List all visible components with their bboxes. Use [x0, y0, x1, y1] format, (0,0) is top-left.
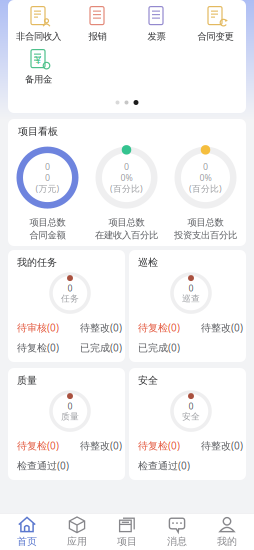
staticText: 0: [188, 400, 193, 412]
staticText: 待复检(0): [138, 439, 180, 452]
staticText: 应用: [67, 535, 87, 548]
staticText: 已完成(0): [138, 341, 180, 354]
staticText: 0: [124, 161, 129, 173]
staticText: 待整改(0): [201, 439, 243, 452]
button[interactable]: 我的: [202, 515, 252, 549]
staticText: 质量: [61, 411, 79, 422]
staticText: 安全: [138, 374, 158, 387]
staticText: 检查通过(0): [138, 459, 190, 472]
button[interactable]: 非合同收入: [9, 2, 68, 45]
staticText: 质量: [17, 374, 37, 387]
staticText: 发票: [147, 31, 165, 42]
staticText: (百分比): [189, 183, 222, 195]
button[interactable]: 报销: [68, 2, 127, 45]
staticText: ¥: [35, 52, 41, 67]
staticText: 待复检(0): [138, 321, 180, 334]
staticText: 项目总数: [108, 217, 144, 228]
staticText: 在建收入百分比: [95, 229, 158, 241]
staticText: 已完成(0): [80, 341, 122, 354]
staticText: 我的任务: [17, 256, 57, 269]
staticText: 巡查: [182, 293, 200, 304]
staticText: 投资支出百分比: [174, 229, 237, 241]
staticText: 0: [67, 282, 72, 294]
staticText: 项目总数: [187, 217, 223, 228]
staticText: 消息: [167, 535, 187, 548]
button[interactable]: ¥: [9, 45, 68, 88]
button[interactable]: 项目: [102, 515, 152, 549]
staticText: 合同金额: [29, 229, 65, 241]
staticText: (百分比): [110, 183, 143, 195]
button[interactable]: 发票: [127, 2, 186, 45]
button[interactable]: 合同变更: [186, 2, 245, 45]
staticText: 待整改(0): [80, 321, 122, 334]
staticText: 合同变更: [197, 31, 233, 42]
staticText: 任务: [61, 293, 79, 304]
staticText: 报销: [88, 31, 106, 42]
button[interactable]: 应用: [52, 515, 102, 549]
staticText: 0%: [120, 172, 132, 184]
staticText: 巡检: [138, 256, 158, 269]
staticText: 检查通过(0): [17, 459, 69, 472]
staticText: 0: [45, 172, 50, 184]
staticText: 非合同收入: [16, 31, 61, 42]
staticText: 首页: [17, 535, 37, 548]
staticText: 项目看板: [18, 125, 58, 138]
staticText: 待复检(0): [17, 341, 59, 354]
staticText: 待整改(0): [80, 439, 122, 452]
staticText: 安全: [182, 411, 200, 422]
staticText: 0%: [199, 172, 211, 184]
staticText: (万元): [35, 183, 59, 195]
staticText: 项目: [117, 535, 137, 548]
button[interactable]: 消息: [152, 515, 202, 549]
staticText: 待复检(0): [17, 439, 59, 452]
staticText: 0: [188, 282, 193, 294]
staticText: 项目总数: [29, 217, 65, 228]
staticText: 待审核(0): [17, 321, 59, 334]
button[interactable]: 首页: [2, 515, 52, 549]
staticText: 我的: [217, 535, 237, 548]
staticText: 待整改(0): [201, 321, 243, 334]
staticText: 0: [67, 400, 72, 412]
staticText: 备用金: [25, 74, 52, 85]
staticText: 0: [45, 161, 50, 173]
staticText: 0: [203, 161, 208, 173]
